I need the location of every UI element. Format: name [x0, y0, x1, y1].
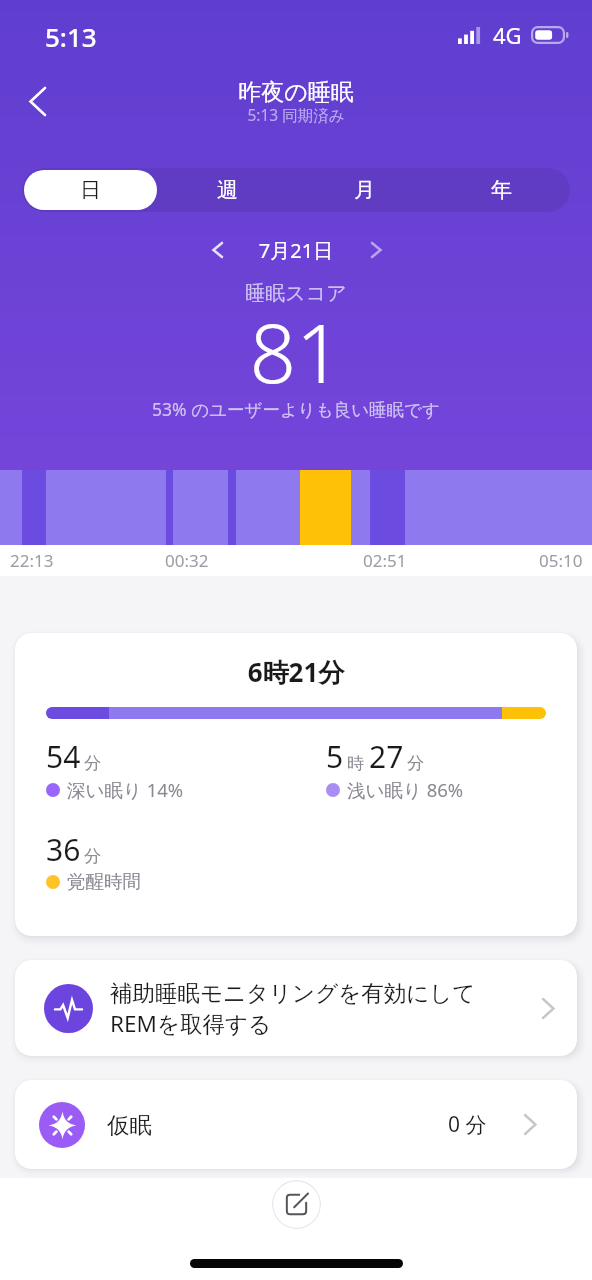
staticText: 睡眠スコア [0, 281, 592, 306]
staticText: 4G [493, 20, 522, 50]
staticText: 分 [84, 846, 101, 867]
staticText: 仮眠 [107, 1111, 448, 1139]
staticText: 22:13 [10, 549, 54, 572]
staticText: 分 [84, 753, 101, 774]
staticText: 深い眠り 14% [67, 777, 184, 802]
staticText: 5:13 [45, 19, 97, 54]
staticText: 週 [217, 177, 238, 203]
button[interactable]: 日 [24, 170, 157, 210]
staticText: 02:51 [363, 549, 407, 572]
staticText: 54 [46, 736, 81, 777]
staticText: 月 [354, 177, 375, 203]
button[interactable]: Back [15, 79, 60, 124]
staticText: 浅い眠り 86% [347, 777, 464, 802]
button[interactable]: 週 [161, 170, 294, 210]
button[interactable]: 仮眠 [15, 1080, 577, 1169]
button[interactable]: Previous day [201, 234, 233, 266]
staticText: 05:10 [539, 549, 583, 572]
button[interactable]: 補助睡眠モニタリングを有効にして REMを取得する [15, 960, 577, 1056]
staticText: 00:32 [165, 549, 209, 572]
staticText: 5:13 同期済み [0, 104, 592, 125]
button[interactable]: Edit [272, 1180, 321, 1229]
staticText: 36 [46, 829, 81, 870]
staticText: 時 [347, 753, 364, 774]
staticText: 昨夜の睡眠 [0, 78, 592, 107]
staticText: 年 [491, 177, 512, 203]
staticText: 5 [326, 736, 344, 777]
staticText: 覚醒時間 [67, 870, 141, 893]
staticText: 補助睡眠モニタリングを有効にして REMを取得する [110, 979, 543, 1038]
staticText: 6時21分 [15, 654, 577, 690]
staticText: 日 [80, 177, 101, 203]
staticText: 0 分 [448, 1110, 487, 1139]
staticText: 53% のユーザーよりも良い睡眠です [0, 397, 592, 421]
staticText: 81 [0, 296, 592, 406]
staticText: 7月21日 [0, 237, 592, 264]
staticText: 分 [407, 753, 424, 774]
staticText: 27 [369, 736, 404, 777]
button[interactable]: 月 [298, 170, 431, 210]
button[interactable]: Next day [360, 234, 392, 266]
button[interactable]: 年 [435, 170, 568, 210]
